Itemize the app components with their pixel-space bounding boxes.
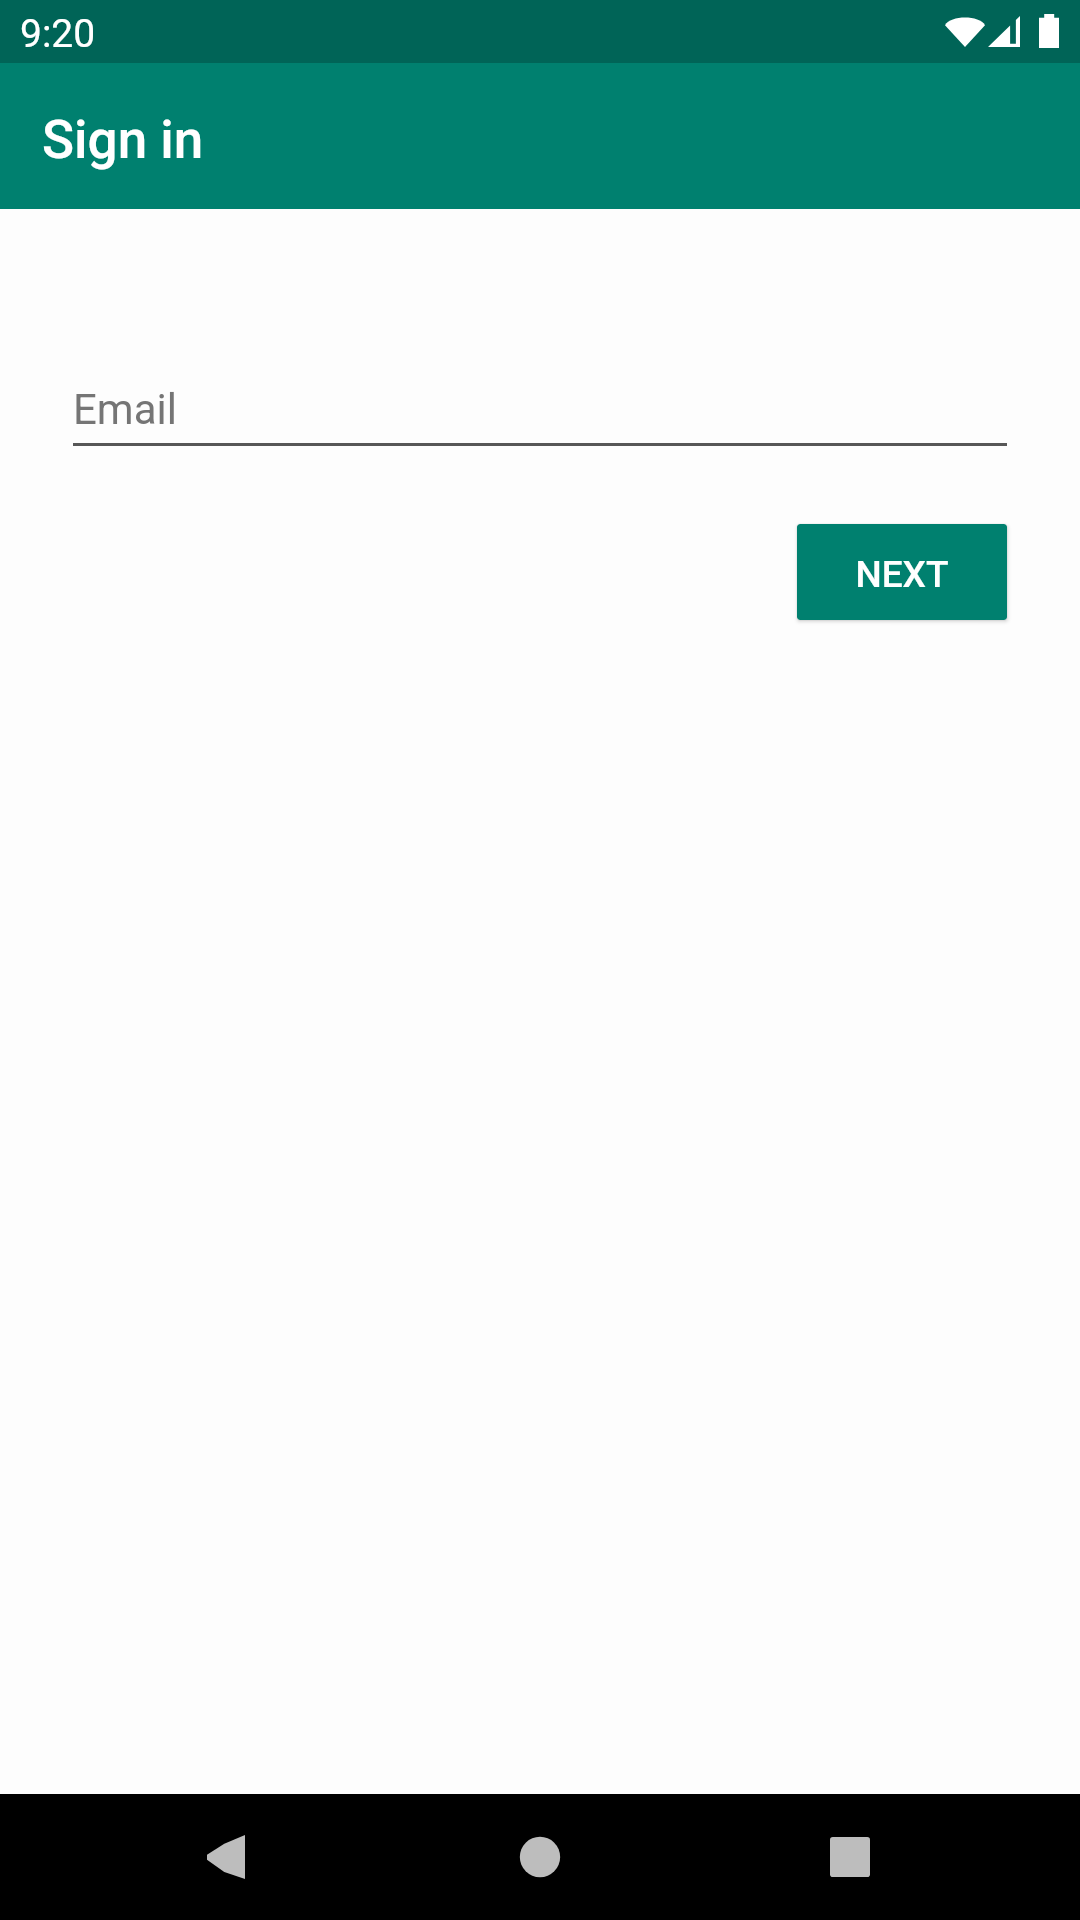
staticText: Email bbox=[73, 385, 177, 434]
other: Battery bbox=[1039, 14, 1059, 48]
other: Mobile signal bbox=[988, 16, 1020, 47]
other: Wi-Fi signal bbox=[945, 13, 985, 47]
button[interactable]: Home bbox=[495, 1812, 585, 1902]
button[interactable]: NEXT bbox=[797, 524, 1007, 620]
staticText: NEXT bbox=[855, 553, 949, 596]
button[interactable]: Back bbox=[181, 1812, 271, 1902]
button[interactable]: Email bbox=[73, 380, 1007, 450]
button[interactable]: Recent apps bbox=[805, 1812, 895, 1902]
staticText: 9:20 bbox=[20, 11, 96, 57]
staticText: Sign in bbox=[42, 109, 204, 171]
